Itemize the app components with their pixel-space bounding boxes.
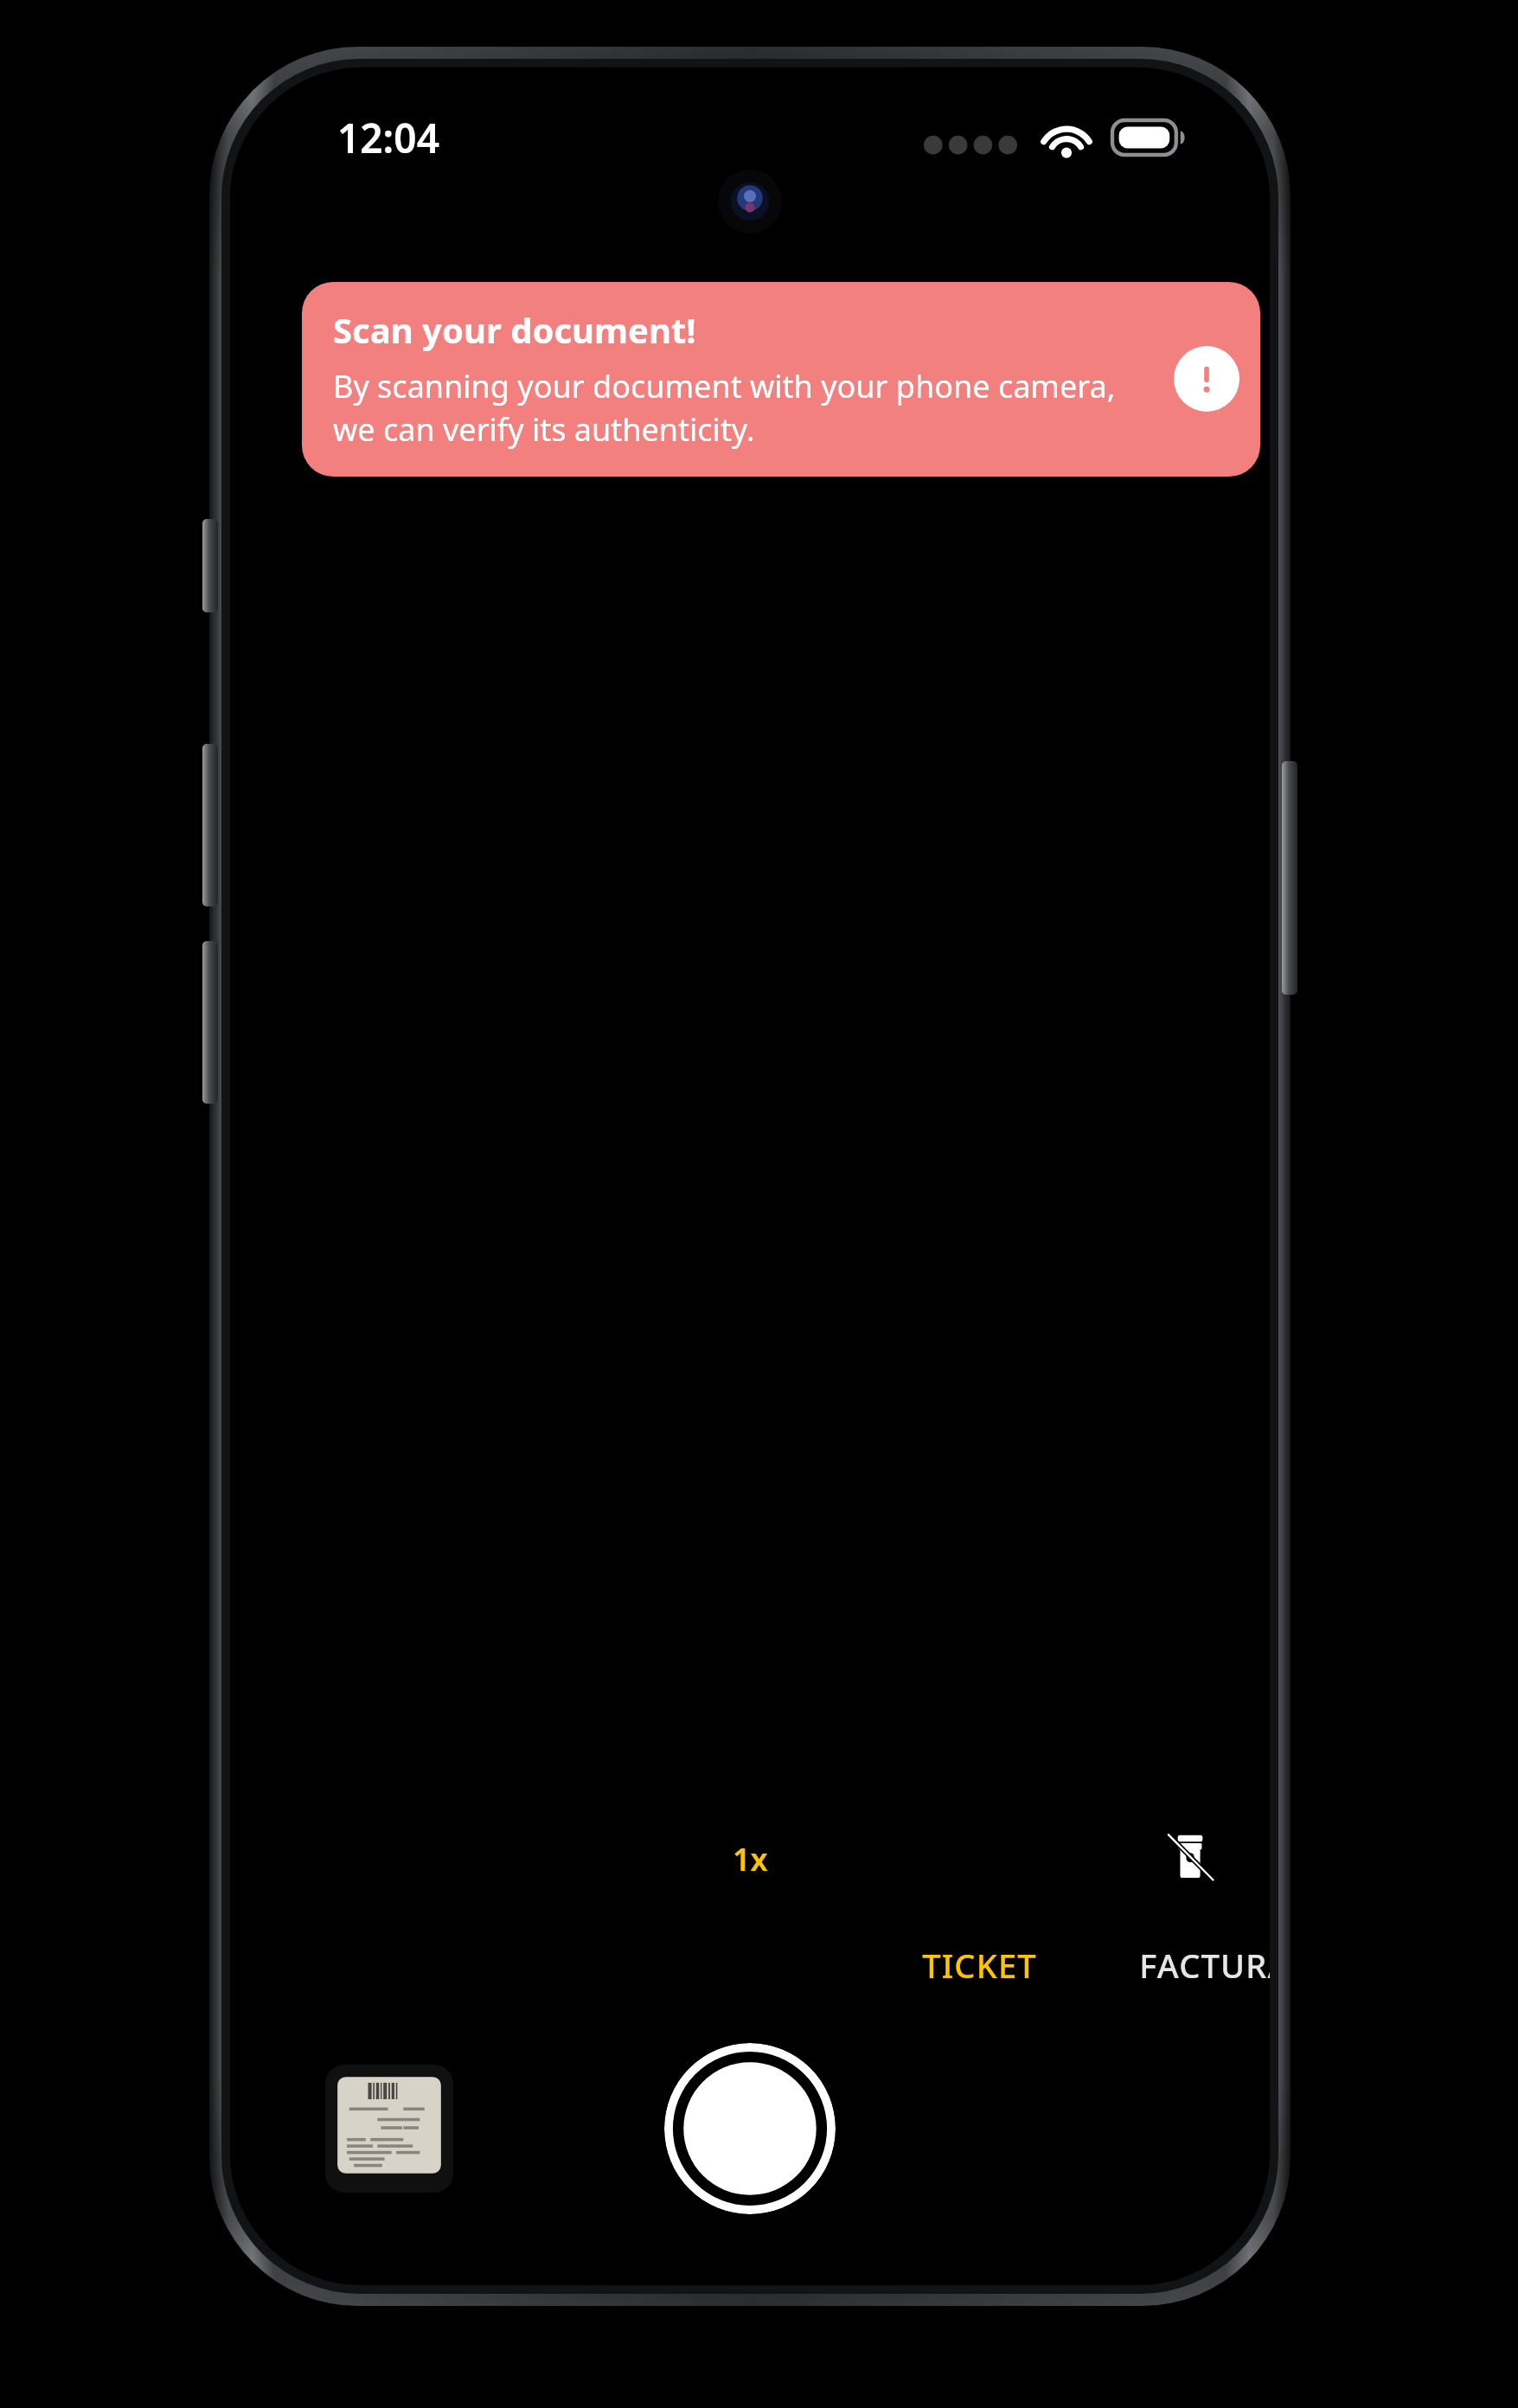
staticText: 1x	[733, 1838, 768, 1880]
staticText: By scanning your document with your phon…	[333, 365, 1156, 451]
staticText: FACTURA	[1139, 1943, 1270, 1988]
staticText: TICKET	[922, 1943, 1037, 1988]
staticText: Scan your document!	[333, 306, 696, 353]
button[interactable]: TICKET	[913, 1932, 1046, 1998]
button[interactable]: FACTURA	[1130, 1932, 1270, 1998]
button[interactable]: Last photo	[325, 2065, 453, 2193]
button[interactable]: Scan your document!	[302, 282, 1260, 477]
button[interactable]: 1x	[717, 1831, 784, 1887]
button[interactable]: Take photo	[664, 2043, 836, 2214]
button[interactable]: Flashlight off	[1149, 1817, 1232, 1900]
staticText: 12:04	[337, 111, 439, 165]
